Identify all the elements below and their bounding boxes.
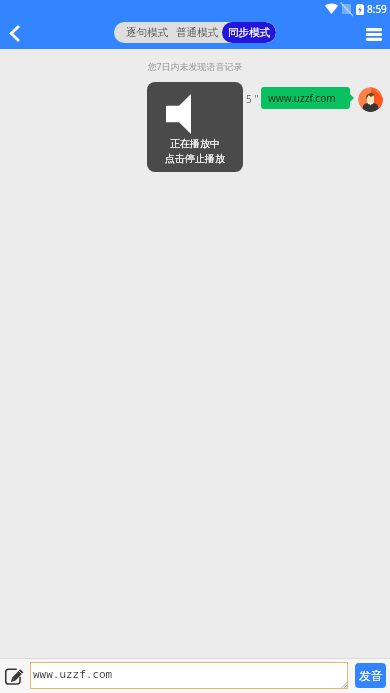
button[interactable]: Back (0, 16, 32, 48)
staticText: 发音 (359, 668, 383, 683)
button[interactable]: www.uzzf.com (30, 662, 348, 689)
button[interactable]: 同步模式 (222, 22, 276, 43)
staticText: 您7日内未发现语音记录 (0, 60, 390, 72)
staticText: www.uzzf.com (33, 666, 113, 681)
staticText: 点击停止播放 (165, 152, 225, 165)
staticText: 8:59 (367, 2, 387, 16)
button[interactable]: User avatar (358, 87, 383, 112)
staticText: 逐句模式 (126, 26, 168, 39)
button[interactable]: Edit (4, 665, 25, 686)
button[interactable]: 逐句模式 (122, 22, 172, 43)
button[interactable]: Menu (354, 17, 390, 47)
staticText: 同步模式 (228, 26, 270, 39)
button[interactable]: 普通模式 (172, 22, 222, 43)
button[interactable]: 正在播放中 (147, 82, 243, 172)
staticText: 正在播放中 (170, 137, 220, 150)
staticText: 5 '' (246, 92, 259, 106)
button[interactable]: www.uzzf.com (261, 87, 350, 109)
button[interactable]: 发音 (355, 663, 386, 688)
staticText: www.uzzf.com (268, 91, 336, 105)
staticText: 普通模式 (176, 26, 218, 39)
